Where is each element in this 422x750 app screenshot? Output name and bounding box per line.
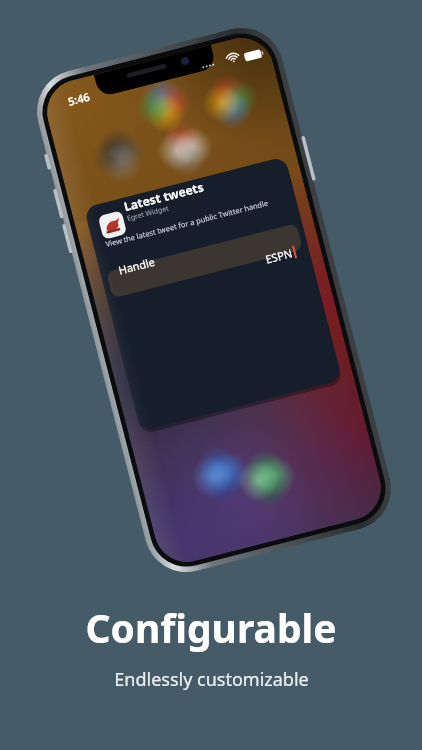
- staticText: Handle: [117, 254, 156, 277]
- button[interactable]: iPhone showing Latest tweets widget conf…: [0, 0, 422, 750]
- staticText: Egret Widget: [126, 203, 170, 224]
- staticText: Latest tweets: [122, 178, 205, 214]
- staticText: ESPN: [264, 245, 295, 267]
- button[interactable]: Handle: [99, 210, 305, 288]
- staticText: Configurable: [85, 601, 337, 654]
- staticText: Endlessly customizable: [114, 667, 309, 692]
- button[interactable]: Latest tweets: [85, 157, 310, 307]
- staticText: View the latest tweet for a public Twitt…: [104, 198, 270, 249]
- button[interactable]: ESPN: [107, 241, 310, 307]
- staticText: 5:46: [66, 89, 91, 109]
